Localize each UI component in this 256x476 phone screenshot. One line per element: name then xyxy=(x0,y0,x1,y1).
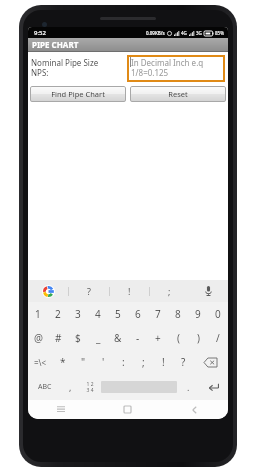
button[interactable]: / xyxy=(208,326,228,350)
staticText: =\< xyxy=(34,357,47,368)
staticText: 0 xyxy=(215,307,221,321)
staticText: # xyxy=(55,331,62,345)
staticText: ABC xyxy=(38,382,52,392)
button[interactable]: : xyxy=(113,350,133,374)
button[interactable]: _ xyxy=(88,326,108,350)
button[interactable]: ? xyxy=(173,350,193,374)
staticText: " xyxy=(81,355,86,369)
button[interactable]: + xyxy=(148,326,168,350)
button[interactable]: 3 xyxy=(68,302,88,326)
button[interactable]: In Decimal Inch e.q 1/8=0.125 xyxy=(127,55,225,82)
button[interactable]: ? xyxy=(69,280,109,302)
button[interactable]: 0 xyxy=(208,302,228,326)
button[interactable]: ; xyxy=(133,350,153,374)
button[interactable]: =\< xyxy=(28,350,53,374)
staticText: * xyxy=(60,355,66,369)
button[interactable]: Reset xyxy=(130,86,226,102)
button[interactable]: Backspace xyxy=(193,350,228,374)
staticText: 1 xyxy=(35,307,41,321)
button[interactable]: 5 xyxy=(108,302,128,326)
staticText: 3 xyxy=(75,307,81,321)
staticText: + xyxy=(155,331,161,345)
staticText: ' xyxy=(102,355,105,369)
button[interactable]: 1 2 3 4 xyxy=(80,374,99,400)
staticText: Nominal Pipe Size NPS: xyxy=(31,57,127,78)
button[interactable]: 2 xyxy=(48,302,68,326)
button[interactable]: Find Pipe Chart xyxy=(30,86,126,102)
button[interactable]: ABC xyxy=(28,374,61,400)
staticText: 9:52 xyxy=(34,29,46,37)
button[interactable]: , xyxy=(61,374,80,400)
staticText: 3G xyxy=(196,30,202,36)
staticText: _ xyxy=(96,331,101,345)
staticText: 6 xyxy=(135,307,141,321)
button[interactable]: 7 xyxy=(148,302,168,326)
button[interactable]: ! xyxy=(110,280,149,302)
staticText: 2 xyxy=(55,307,61,321)
button[interactable]: 1 xyxy=(28,302,48,326)
staticText: 85% xyxy=(215,30,224,36)
button[interactable]: @ xyxy=(28,326,48,350)
staticText: PIPE CHART xyxy=(32,39,79,50)
staticText: , xyxy=(69,381,72,393)
staticText: / xyxy=(216,331,220,345)
staticText: 0.09KB/s xyxy=(146,30,165,36)
button[interactable]: Enter xyxy=(198,374,228,400)
button[interactable]: 9 xyxy=(188,302,208,326)
staticText: 9 xyxy=(195,307,201,321)
button[interactable]: ; xyxy=(150,280,189,302)
staticText: ; xyxy=(142,355,145,369)
staticText: 4G xyxy=(181,30,187,36)
button[interactable]: ) xyxy=(188,326,208,350)
button[interactable]: ( xyxy=(168,326,188,350)
staticText: ! xyxy=(162,355,165,369)
staticText: Reset xyxy=(168,89,188,99)
button[interactable]: # xyxy=(48,326,68,350)
staticText: ) xyxy=(197,331,200,345)
button[interactable]: - xyxy=(128,326,148,350)
staticText: In Decimal Inch e.q 1/8=0.125 xyxy=(131,57,204,78)
button[interactable]: " xyxy=(73,350,93,374)
button[interactable]: 8 xyxy=(168,302,188,326)
staticText: ! xyxy=(128,285,131,297)
staticText: : xyxy=(122,355,125,369)
button[interactable]: Back xyxy=(161,400,228,419)
button[interactable]: . xyxy=(179,374,198,400)
staticText: $ xyxy=(75,331,81,345)
staticText: . xyxy=(187,381,190,393)
button[interactable]: * xyxy=(53,350,73,374)
staticText: ( xyxy=(177,331,180,345)
staticText: 7 xyxy=(155,307,161,321)
staticText: ? xyxy=(87,285,91,297)
staticText: & xyxy=(114,331,122,345)
button[interactable]: $ xyxy=(68,326,88,350)
button[interactable]: & xyxy=(108,326,128,350)
button[interactable]: ' xyxy=(93,350,113,374)
staticText: 4 xyxy=(95,307,101,321)
button[interactable]: Recent apps xyxy=(28,400,94,419)
staticText: - xyxy=(136,331,140,345)
staticText: ? xyxy=(181,355,186,369)
button[interactable]: 4 xyxy=(88,302,108,326)
staticText: Find Pipe Chart xyxy=(51,89,105,99)
button[interactable]: 6 xyxy=(128,302,148,326)
staticText: @ xyxy=(34,331,43,345)
button[interactable]: Voice input xyxy=(189,280,228,302)
button[interactable]: Home xyxy=(94,400,161,419)
staticText: 5 xyxy=(115,307,121,321)
staticText: 1 2 3 4 xyxy=(86,381,94,394)
staticText: 8 xyxy=(175,307,181,321)
button[interactable]: ! xyxy=(153,350,173,374)
staticText: ; xyxy=(168,285,171,297)
button[interactable]: Google search xyxy=(28,280,68,302)
